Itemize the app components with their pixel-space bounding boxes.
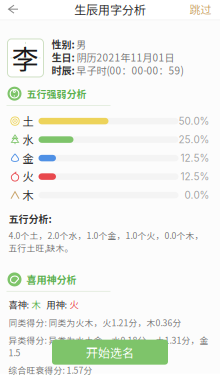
staticText: 时辰: <box>51 63 74 77</box>
staticText: 12.5% <box>180 171 209 183</box>
staticText: 50.0% <box>178 115 209 127</box>
staticText: 金 <box>22 150 33 166</box>
button[interactable]: 跳过 <box>184 0 216 20</box>
staticText: 李 <box>12 39 39 77</box>
staticText: 早子时(00：00-00：59) <box>74 63 183 77</box>
staticText: 性别: <box>51 37 74 51</box>
staticText: 五行分析: <box>8 211 51 226</box>
staticText: 4.0个土，2.0个水，1.0个金，1.0个火，0.0个木，五行土旺,缺木。 <box>8 229 203 254</box>
staticText: 阴历2021年11月01日 <box>74 50 174 64</box>
staticText: 综合旺衰得分: 1.57分 <box>8 364 92 375</box>
staticText: 木 <box>22 187 33 203</box>
staticText: 0.0% <box>184 189 209 201</box>
staticText: 土 <box>22 113 33 129</box>
staticText: 生辰用字分析 <box>74 0 146 18</box>
staticText: 五行强弱分析 <box>26 86 86 101</box>
button[interactable]: Back <box>0 0 22 19</box>
staticText: 开始选名 <box>86 343 134 361</box>
staticText: 喜用神分析 <box>26 272 76 287</box>
staticText: 用神: <box>40 298 67 311</box>
staticText: 25.0% <box>178 134 209 146</box>
staticText: 12.5% <box>180 152 209 164</box>
button[interactable]: 开始选名 <box>52 340 168 365</box>
staticText: 火 <box>67 298 78 311</box>
staticText: 异类得分: 异类为水土金，水0.18分，土1.31分，金1.5 <box>8 334 208 359</box>
staticText: 跳过 <box>189 1 211 17</box>
staticText: 生日: <box>51 50 74 64</box>
staticText: 火 <box>22 168 33 185</box>
staticText: 同类得分: 同类为火木，火1.21分，木0.36分 <box>8 316 181 329</box>
staticText: 水 <box>22 131 33 148</box>
staticText: 木 <box>29 298 40 311</box>
staticText: 喜神: <box>8 298 29 311</box>
staticText: 男 <box>74 37 86 51</box>
